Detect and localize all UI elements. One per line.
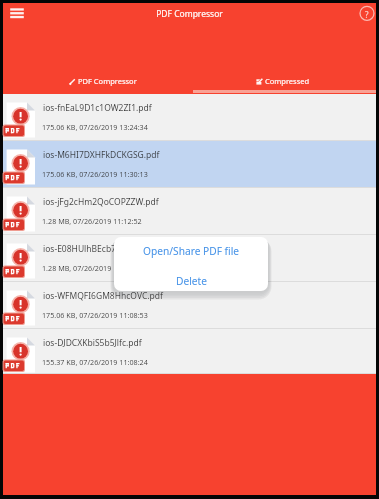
staticText: ios-WFMQFI6GM8HhcOVC.pdf — [43, 290, 163, 302]
staticText: ios-fnEaL9D1c1OW2ZI1.pdf — [43, 102, 152, 114]
button[interactable]: Help — [356, 3, 377, 24]
staticText: ios-E08HUlhBEcb7VqmZPNc.pdf — [43, 243, 171, 255]
staticText: ios-M6HI7DXHFkDCKGSG.pdf — [43, 149, 160, 161]
staticText: 1.28 MB, 07/26/2019 11:05:41 — [42, 263, 142, 273]
staticText: 175.06 KB, 07/26/2019 13:24:34 — [42, 122, 148, 132]
staticText: ios-DJDCXKbiS5b5Jlfc.pdf — [43, 337, 142, 349]
button[interactable]: ios-jFg2cHm2QoCOPZZW.pdf — [3, 188, 376, 235]
staticText: 175.06 KB, 07/26/2019 11:30:13 — [42, 169, 148, 179]
button[interactable]: Compressed — [193, 73, 376, 93]
staticText: PDF Compressor — [3, 8, 376, 20]
button[interactable]: ios-E08HUlhBEcb7VqmZPNc.pdf — [3, 235, 376, 282]
staticText: Compressed — [265, 76, 310, 86]
staticText: ios-jFg2cHm2QoCOPZZW.pdf — [43, 196, 159, 208]
button[interactable]: ios-M6HI7DXHFkDCKGSG.pdf — [3, 141, 376, 188]
staticText: PDF Compressor — [78, 76, 137, 86]
staticText: 155.37 KB, 07/26/2019 11:08:24 — [42, 357, 148, 367]
staticText: ? — [365, 9, 369, 20]
button[interactable]: ios-DJDCXKbiS5b5Jlfc.pdf — [3, 329, 376, 374]
staticText: 1.28 MB, 07/26/2019 11:12:52 — [42, 216, 142, 226]
button[interactable]: ios-fnEaL9D1c1OW2ZI1.pdf — [3, 94, 376, 141]
staticText: Open/Share PDF file — [143, 244, 240, 258]
staticText: Delete — [176, 274, 207, 288]
button[interactable]: Open/Share PDF file — [114, 237, 268, 264]
button[interactable]: Menu — [5, 5, 27, 26]
button[interactable]: PDF Compressor — [3, 73, 193, 93]
button[interactable]: ios-WFMQFI6GM8HhcOVC.pdf — [3, 282, 376, 329]
staticText: 175.06 KB, 07/26/2019 11:08:53 — [42, 310, 148, 320]
button[interactable]: Delete — [114, 264, 268, 291]
